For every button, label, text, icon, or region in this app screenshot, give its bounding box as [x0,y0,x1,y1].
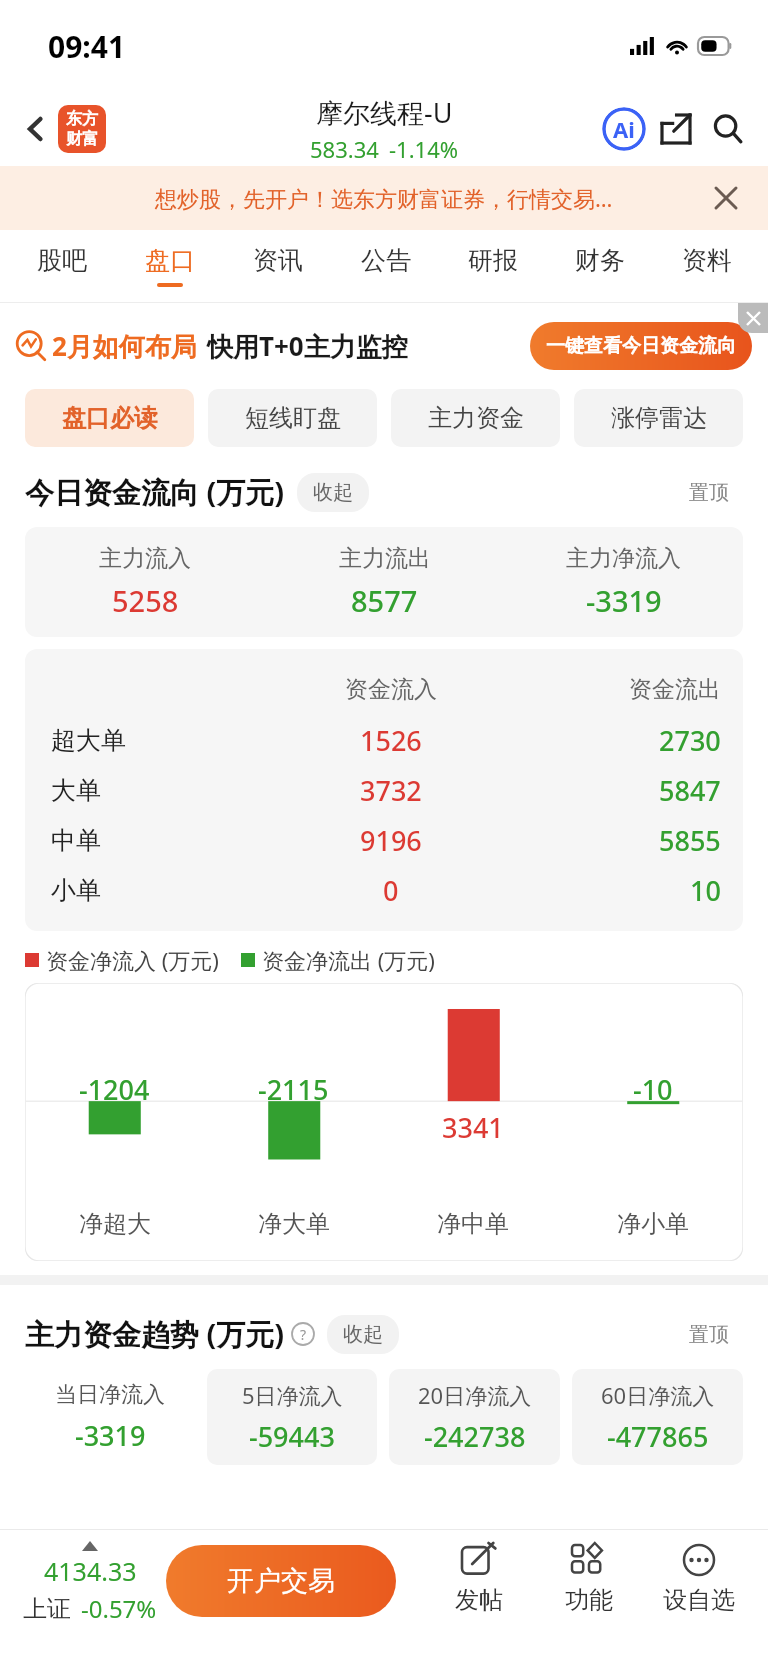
button[interactable]: 研报 [439,230,546,302]
staticText: 盘口必读 [62,403,158,433]
button[interactable]: Help [291,1322,315,1346]
staticText: -477865 [607,1418,709,1455]
button[interactable]: 功能 [534,1543,644,1615]
button[interactable]: 当日净流入 [25,1369,195,1465]
button[interactable]: 大单 [25,765,743,815]
staticText: 资金流出 [629,675,721,704]
button[interactable]: 置顶 [675,474,743,511]
staticText: 资金净流入 (万元) [46,945,219,975]
button[interactable]: 收起 [327,1315,399,1354]
staticText: 主力资金趋势 (万元) [25,1314,285,1354]
staticText: 8577 [351,581,418,620]
staticText: 功能 [565,1585,613,1615]
staticText: 当日净流入 [55,1381,165,1409]
button[interactable]: 主力流入 [25,527,743,637]
button[interactable]: 发帖 [424,1543,534,1615]
staticText: 短线盯盘 [245,403,341,433]
button[interactable]: 2月如何布局 [16,303,752,389]
staticText: -3319 [586,581,662,620]
staticText: 置顶 [689,480,729,505]
staticText: 1526 [360,722,422,759]
staticText: 净超大 [79,1209,151,1239]
staticText: 想炒股，先开户！选东方财富证券，行情交易… [155,183,613,213]
staticText: 中单 [51,825,101,856]
button[interactable]: 短线盯盘 [208,389,377,447]
button[interactable]: 超大单 [25,715,743,765]
button[interactable]: Close ad [738,303,768,333]
button[interactable]: 想炒股，先开户！选东方财富证券，行情交易… [0,166,768,230]
staticText: 60日净流入 [601,1380,715,1410]
button[interactable]: 中单 [25,815,743,865]
button[interactable]: 收起 [297,473,369,512]
staticText: 研报 [468,245,518,276]
button[interactable]: 5日净流入 [207,1369,377,1465]
button[interactable]: 一键查看今日资金流向 [530,322,752,370]
staticText: 主力流入 [99,544,191,573]
button[interactable]: 资料 [653,230,760,302]
staticText: 3732 [360,772,422,809]
staticText: 小单 [51,875,101,906]
staticText: 发帖 [455,1585,503,1615]
button[interactable]: 公告 [332,230,439,302]
staticText: 5847 [659,772,721,809]
staticText: 9196 [360,822,422,859]
staticText: 上证 [23,1594,71,1624]
staticText: 东方 [66,109,98,129]
staticText: 财务 [575,245,625,276]
staticText: 5258 [112,581,179,620]
staticText: -1.14% [389,134,459,164]
staticText: 盘口 [145,245,195,276]
staticText: 摩尔线程-U [316,94,453,131]
staticText: -1204 [79,1071,150,1108]
button[interactable]: 涨停雷达 [574,389,743,447]
staticText: -0.57% [81,1592,157,1625]
staticText: 置顶 [689,1322,729,1347]
staticText: 一键查看今日资金流向 [546,334,736,358]
staticText: 2月如何布局 [52,328,197,364]
staticText: 4134.33 [44,1554,137,1588]
staticText: 资讯 [253,245,303,276]
button[interactable]: 主力资金 [391,389,560,447]
staticText: 主力净流入 [566,544,681,573]
button[interactable]: 开户交易 [166,1545,396,1617]
button[interactable]: 资讯 [224,230,332,302]
staticText: -242738 [424,1418,526,1455]
staticText: 资金净流出 (万元) [262,945,435,975]
staticText: 开户交易 [227,1564,335,1598]
staticText: 5日净流入 [242,1380,343,1410]
button[interactable]: 60日净流入 [572,1369,743,1465]
button[interactable]: 小单 [25,865,743,915]
staticText: 2730 [659,722,721,759]
staticText: 公告 [361,245,411,276]
staticText: 主力资金 [428,403,524,433]
staticText: 3341 [442,1109,504,1146]
button[interactable]: 财务 [546,230,653,302]
staticText: 10 [690,872,721,909]
button[interactable]: 东方财富 [58,105,106,153]
staticText: 收起 [343,1322,383,1347]
button[interactable]: Back [14,107,58,151]
staticText: -10 [633,1071,673,1108]
button[interactable]: Close [706,178,746,218]
staticText: ? [300,1325,307,1344]
staticText: 今日资金流向 (万元) [25,472,285,512]
button[interactable]: 股吧 [8,230,116,302]
staticText: -59443 [249,1418,335,1455]
button[interactable]: 20日净流入 [389,1369,560,1465]
button[interactable]: Search [702,103,754,155]
staticText: 5855 [659,822,721,859]
staticText: 09:41 [48,26,126,67]
button[interactable]: 设自选 [644,1543,754,1615]
button[interactable]: 盘口 [116,230,224,302]
staticText: -2115 [258,1071,329,1108]
staticText: Ai [613,114,635,144]
button[interactable]: Share [650,103,702,155]
staticText: 资料 [682,245,732,276]
button[interactable]: 置顶 [675,1316,743,1353]
staticText: 股吧 [37,245,87,276]
staticText: 净中单 [437,1209,509,1239]
staticText: 20日净流入 [418,1380,532,1410]
button[interactable]: 盘口必读 [25,389,194,447]
staticText: 涨停雷达 [611,403,707,433]
button[interactable]: AI [598,103,650,155]
